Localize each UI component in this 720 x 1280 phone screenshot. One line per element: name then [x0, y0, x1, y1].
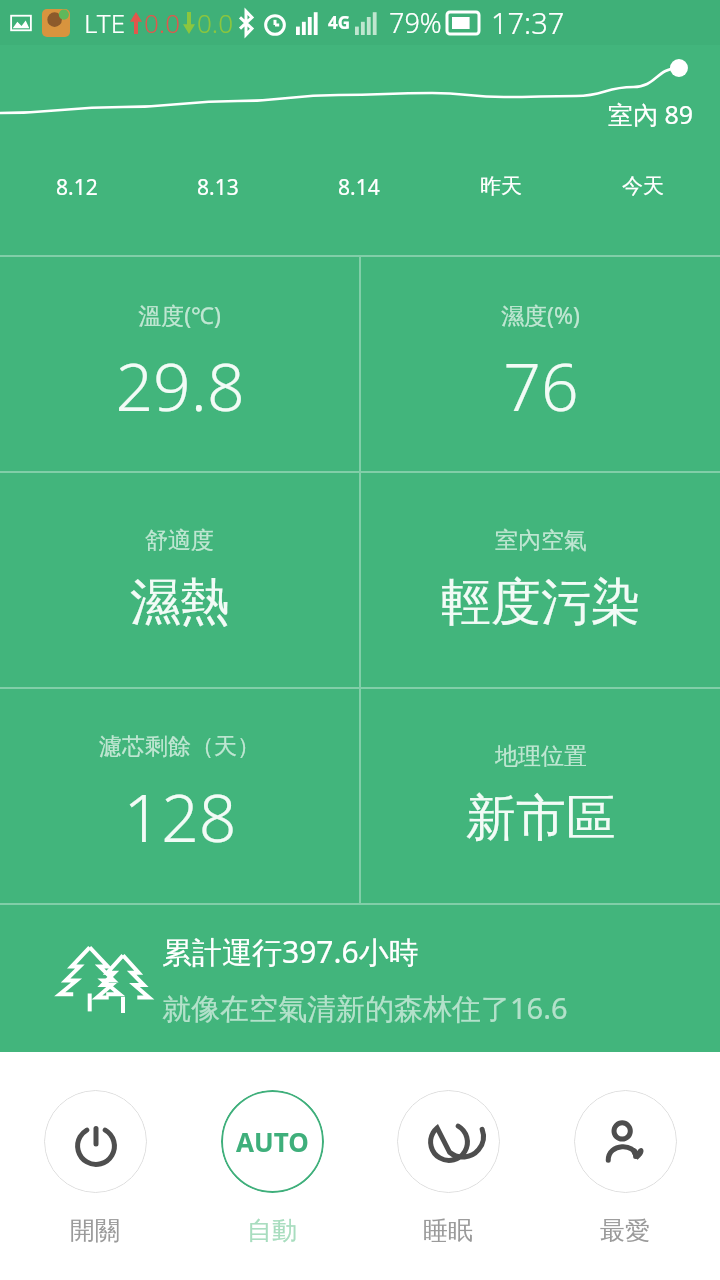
staticText: 0.0	[197, 5, 234, 40]
button[interactable]: 室內空氣	[361, 473, 720, 687]
staticText: 自動	[247, 1215, 297, 1246]
staticText: 今天	[622, 173, 664, 199]
staticText: 76	[503, 340, 579, 430]
button[interactable]: Auto	[207, 1090, 337, 1246]
staticText: 輕度污染	[441, 571, 641, 634]
staticText: 溫度(℃)	[138, 299, 221, 330]
button[interactable]: 舒適度	[0, 473, 359, 687]
staticText: 室內空氣	[495, 526, 587, 555]
staticText: 就像在空氣清新的森林住了16.6	[162, 988, 568, 1028]
staticText: 地理位置	[495, 742, 587, 771]
staticText: 最愛	[600, 1215, 650, 1246]
button[interactable]: 濾芯剩餘（天）	[0, 689, 359, 903]
staticText: 睡眠	[423, 1215, 473, 1246]
staticText: 室內 89	[608, 97, 694, 131]
staticText: 8.12	[56, 173, 98, 202]
button[interactable]: 地理位置	[361, 689, 720, 903]
button[interactable]: Favourite	[560, 1090, 690, 1246]
staticText: LTE	[84, 5, 126, 40]
staticText: 0.0	[144, 5, 181, 40]
staticText: AUTO	[236, 1124, 309, 1159]
button[interactable]: Sleep	[383, 1090, 513, 1246]
staticText: 新市區	[466, 787, 616, 850]
button[interactable]: 溫度(℃)	[0, 257, 359, 471]
staticText: 濾芯剩餘（天）	[99, 732, 260, 761]
staticText: 79%	[389, 4, 442, 41]
staticText: 8.13	[197, 173, 239, 202]
staticText: 29.8	[115, 340, 245, 430]
staticText: 濕度(%)	[501, 299, 580, 330]
staticText: 17:37	[491, 3, 565, 42]
staticText: 4G	[328, 11, 351, 34]
staticText: 舒適度	[145, 526, 214, 555]
staticText: 累計運行397.6小時	[162, 931, 419, 972]
staticText: 開關	[70, 1215, 120, 1246]
staticText: 8.14	[338, 173, 380, 202]
staticText: 濕熱	[130, 571, 230, 634]
staticText: 昨天	[480, 173, 522, 199]
staticText: 128	[123, 771, 237, 861]
button[interactable]: 濕度(%)	[361, 257, 720, 471]
button[interactable]: Power	[30, 1090, 160, 1246]
